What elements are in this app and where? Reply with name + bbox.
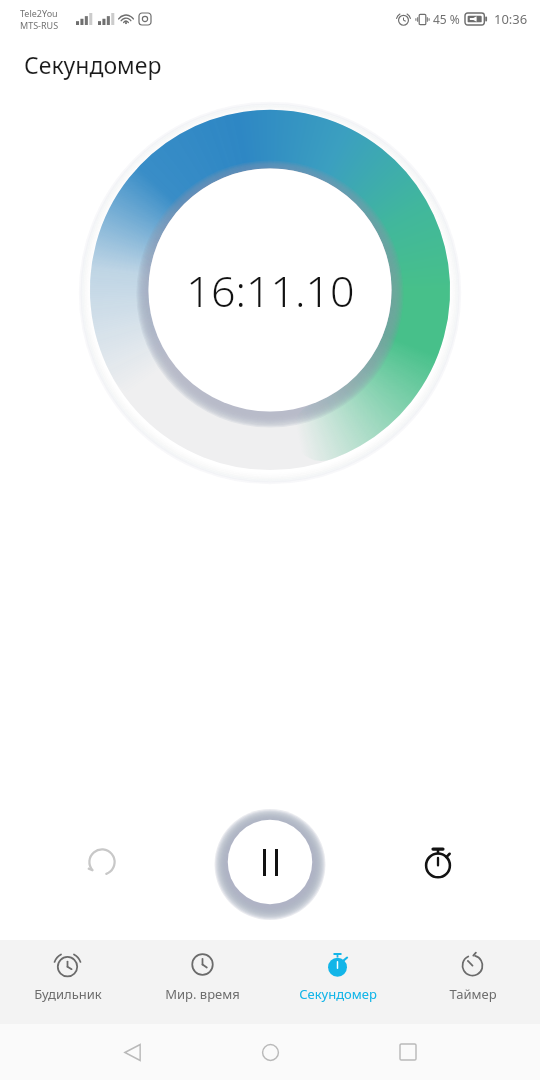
button[interactable]: Мир. время [135,940,270,1024]
button[interactable]: Секундомер [270,940,405,1024]
button[interactable]: Обзор [386,1030,430,1074]
staticText: 10:36 [494,10,528,28]
staticText: 45 % [433,11,460,27]
button[interactable]: Таймер [405,940,540,1024]
button[interactable]: Главный экран [248,1030,292,1074]
staticText: Таймер [449,985,497,1003]
staticText: Мир. время [165,985,240,1003]
button[interactable]: Назад [110,1030,154,1074]
staticText: Будильник [34,985,102,1003]
button[interactable]: Круг [412,836,464,888]
staticText: 16:11.10 [186,261,355,320]
staticText: MTS-RUS [20,19,59,31]
button[interactable]: Сброс [76,836,128,888]
button[interactable]: Пауза [228,820,312,904]
staticText: Секундомер [24,49,162,80]
staticText: Tele2You [20,7,58,19]
button[interactable]: Будильник [0,940,135,1024]
staticText: Секундомер [299,985,377,1003]
